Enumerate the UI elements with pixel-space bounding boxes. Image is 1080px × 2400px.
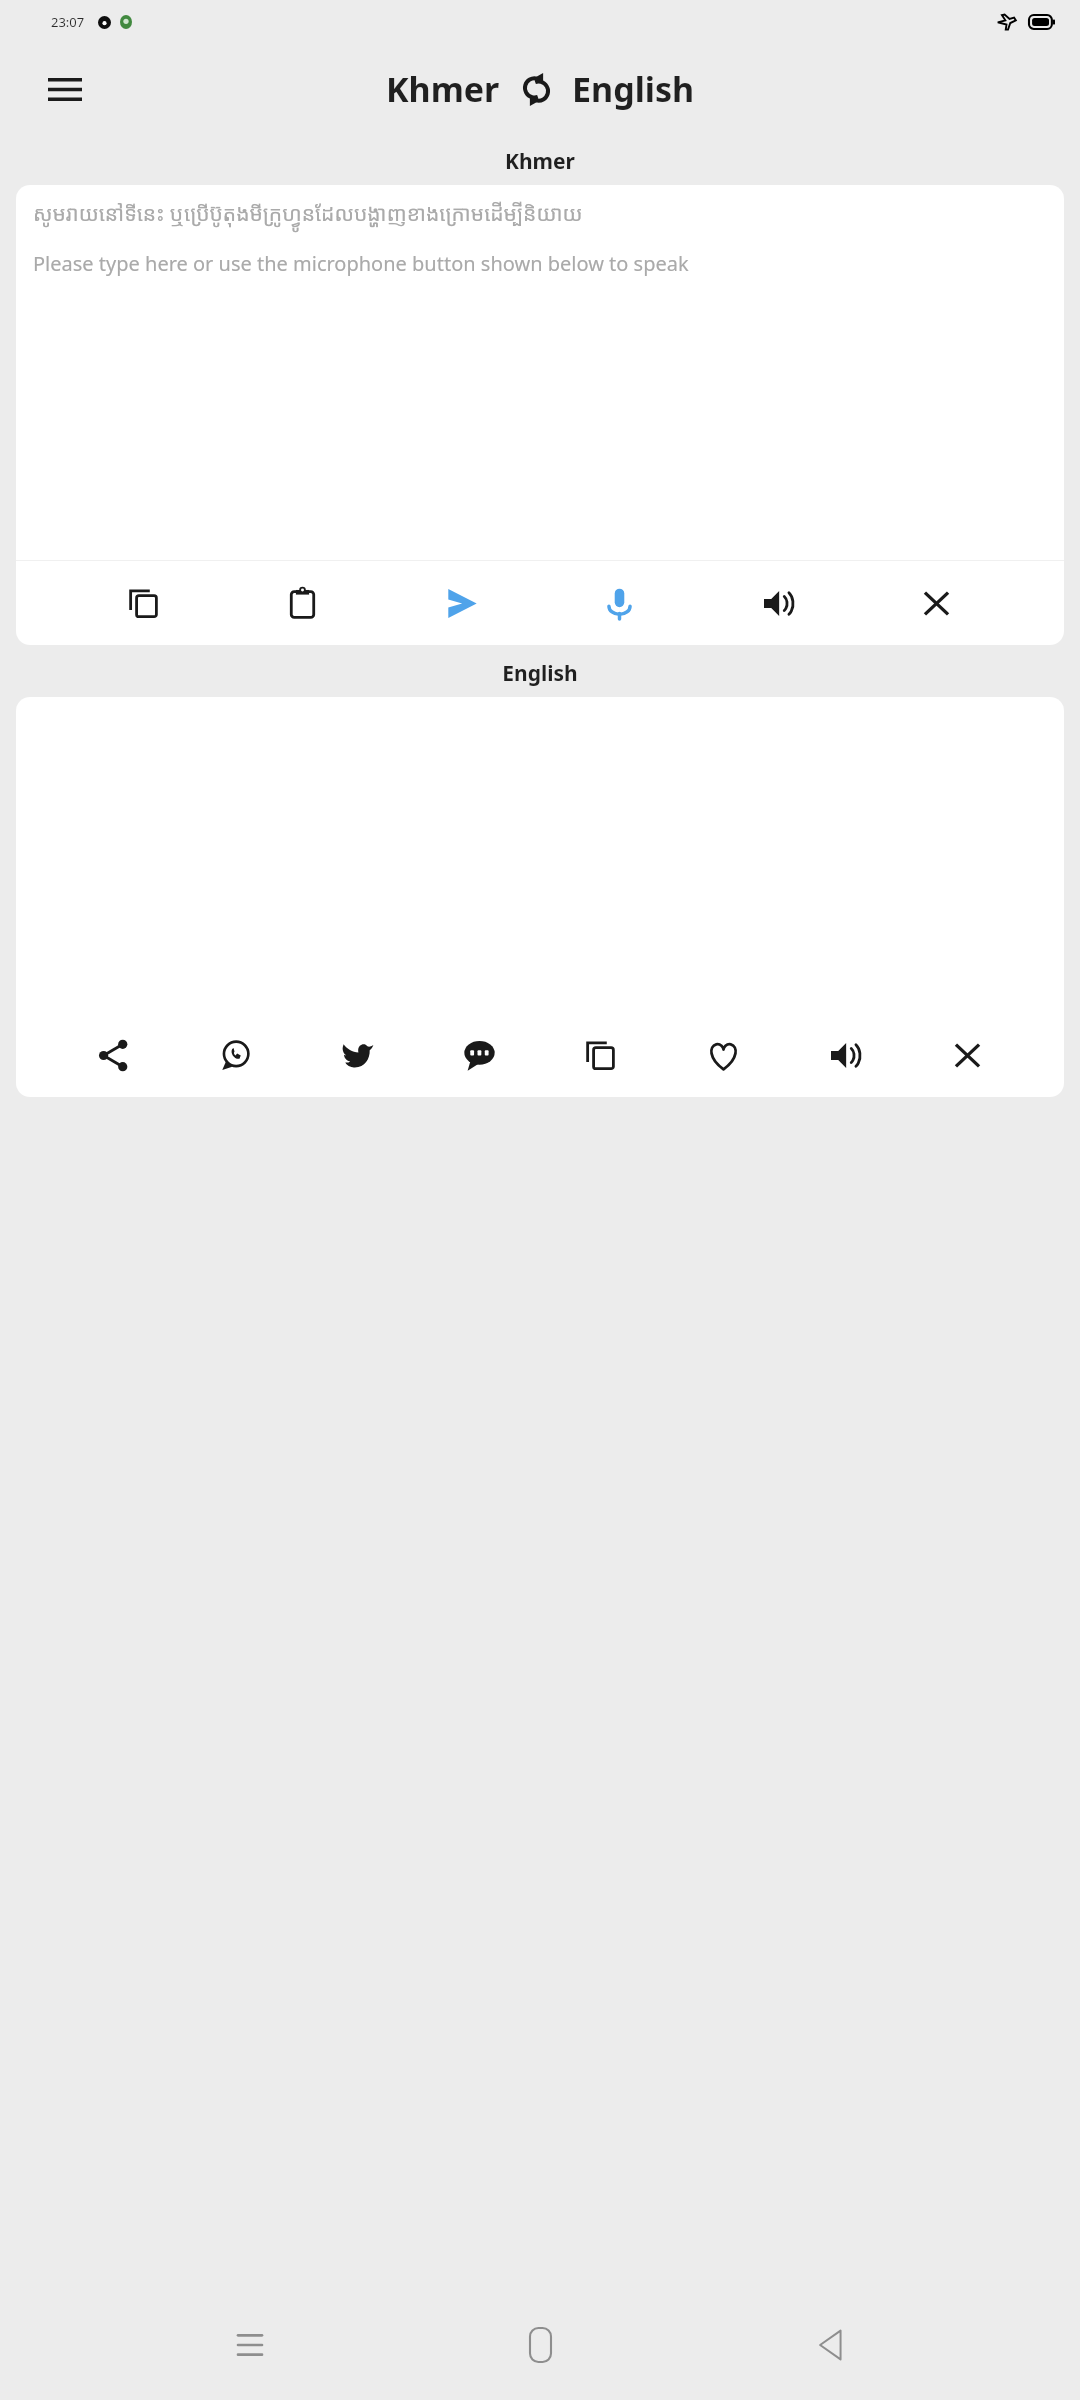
button[interactable]: WhatsApp [204, 1024, 266, 1086]
staticText: English [502, 659, 578, 688]
button[interactable]: Khmer [386, 66, 500, 112]
button[interactable]: SMS [448, 1024, 510, 1086]
button[interactable]: Translate [430, 572, 492, 634]
button[interactable]: Clear [905, 572, 967, 634]
button[interactable]: Home [500, 2305, 580, 2385]
button[interactable]: Clear [936, 1024, 998, 1086]
staticText: សូមរាយនៅទីនេះ ឬប្រើប៊ូតុងមីក្រូហ្វូនដែលប… [33, 199, 583, 228]
button[interactable]: English [572, 66, 695, 112]
staticText: Khmer [505, 147, 575, 176]
staticText: Please type here or use the microphone b… [33, 250, 689, 277]
button[interactable]: Swap languages [513, 66, 559, 112]
button[interactable]: Copy [570, 1024, 632, 1086]
button[interactable]: Listen [814, 1024, 876, 1086]
button[interactable]: Share [82, 1024, 144, 1086]
button[interactable]: Copy [113, 572, 175, 634]
button[interactable]: Listen [747, 572, 809, 634]
staticText: 23:07 [51, 13, 85, 31]
button[interactable]: Twitter [326, 1024, 388, 1086]
button[interactable]: Menu [34, 58, 96, 120]
button[interactable]: Back [790, 2305, 870, 2385]
button[interactable]: Favourite [692, 1024, 754, 1086]
button[interactable]: Paste [271, 572, 333, 634]
button[interactable]: Recents [210, 2305, 290, 2385]
button[interactable]: Speak [588, 572, 650, 634]
